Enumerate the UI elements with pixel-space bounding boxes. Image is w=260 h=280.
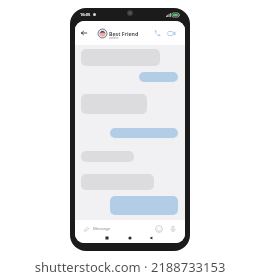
button[interactable]: Emoji [155,225,163,233]
button[interactable] [139,72,178,82]
button[interactable]: Recent apps [105,236,109,240]
button[interactable]: Home [128,236,132,240]
button[interactable]: Video call [167,29,176,38]
staticText: online [109,36,119,40]
button[interactable] [81,151,134,162]
staticText: shutterstock.com · 2188733153 [0,258,260,276]
button[interactable]: Back [80,29,88,37]
button[interactable]: Back [149,236,153,240]
button[interactable]: Message [93,224,153,233]
staticText: Best Friend [109,30,139,37]
button[interactable]: Voice message [169,225,177,233]
button[interactable]: Voice call [153,29,161,37]
button[interactable]: Attach file [82,225,90,233]
button[interactable] [110,128,178,138]
staticText: 16:05 [80,12,91,17]
staticText: Message [93,226,111,232]
button[interactable] [110,196,178,215]
button[interactable]: Best Friend [98,27,139,40]
